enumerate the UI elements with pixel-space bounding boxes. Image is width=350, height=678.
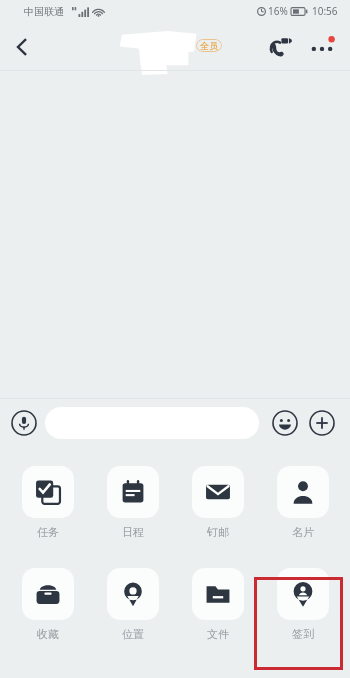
button[interactable]: 钉邮 [186, 466, 249, 539]
button[interactable]: Video call [260, 26, 302, 68]
button[interactable]: 全员 [200, 40, 218, 51]
button[interactable]: 收藏 [16, 568, 79, 641]
staticText: 收藏 [37, 627, 59, 641]
button[interactable]: 位置 [101, 568, 164, 641]
staticText: 10:56 [312, 4, 338, 18]
button[interactable]: More actions [308, 409, 336, 437]
button[interactable]: Emoji [271, 409, 299, 437]
staticText: 日程 [122, 525, 144, 539]
staticText: 16% [268, 4, 288, 18]
staticText: 位置 [122, 627, 144, 641]
button[interactable]: 任务 [16, 466, 79, 539]
button[interactable] [45, 407, 259, 439]
staticText: 任务 [37, 525, 59, 539]
button[interactable]: Voice message [10, 409, 38, 437]
button[interactable]: More options [302, 27, 342, 67]
staticText: 签到 [292, 627, 314, 641]
button[interactable]: 名片 [271, 466, 334, 539]
staticText: 全员 [200, 40, 218, 51]
button[interactable]: Back [0, 25, 44, 69]
staticText: 名片 [292, 525, 314, 539]
staticText: 中国联通 [24, 5, 64, 18]
button[interactable]: 签到 [271, 568, 334, 641]
button[interactable]: 文件 [186, 568, 249, 641]
staticText: 钉邮 [207, 525, 229, 539]
staticText: 文件 [207, 627, 229, 641]
button[interactable]: 日程 [101, 466, 164, 539]
